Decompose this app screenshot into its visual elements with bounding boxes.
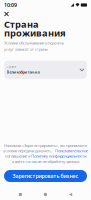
- staticText: Страна: [4, 18, 39, 30]
- staticText: Политику конфиденциальности: [31, 153, 86, 159]
- button[interactable]: соглашение: [5, 153, 27, 159]
- button[interactable]: Back: [66, 190, 75, 199]
- staticText: и: [28, 153, 30, 159]
- staticText: Зарегистрировать бизнес: [12, 172, 78, 180]
- button[interactable]: Пользовательское: [55, 148, 88, 153]
- staticText: условия передачи документов и: [3, 148, 54, 153]
- staticText: Нажимая «Зарегистрировать», вы принимает…: [4, 143, 87, 148]
- button[interactable]: Политику конфиденциальности: [31, 153, 86, 159]
- button[interactable]: Зарегистрировать бизнес: [4, 170, 87, 182]
- staticText: Условия обслуживания и перечень: [4, 40, 64, 45]
- button[interactable]: Страна: [4, 61, 87, 79]
- button[interactable]: Home: [41, 190, 50, 199]
- staticText: и даёте согласие на обработку данных: [11, 159, 79, 164]
- staticText: Пользовательское: [55, 148, 88, 153]
- staticText: соглашение: [5, 153, 27, 159]
- staticText: услуг зависят от страны: [4, 46, 48, 52]
- button[interactable]: Recent apps: [16, 190, 25, 199]
- staticText: Великобритания: [7, 69, 40, 75]
- button[interactable]: Close: [2, 10, 11, 18]
- staticText: 10:09: [4, 1, 17, 9]
- staticText: проживания: [4, 27, 66, 39]
- staticText: Страна: [7, 65, 16, 68]
